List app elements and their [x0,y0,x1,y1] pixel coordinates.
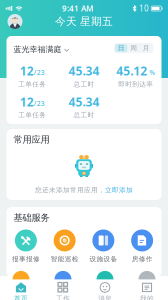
staticText: 您还未添加常用应用， [35,186,105,194]
staticText: 立即添加 [105,186,133,194]
button[interactable]: Profile [7,14,22,29]
button[interactable]: 设施设备 [84,229,123,263]
button[interactable]: 智能巡检 [45,229,84,263]
staticText: 总工时 [73,80,94,88]
staticText: /23 [34,99,45,108]
button[interactable]: 消息 [84,273,126,300]
staticText: 月 [143,44,150,52]
staticText: 蓝光幸福满庭 [13,44,61,54]
staticText: 日 [118,44,125,52]
staticText: 工单任务 [18,80,46,88]
button[interactable]: 首页 [0,273,42,300]
staticText: 45.12 [116,63,147,79]
staticText: 基础服务 [13,212,49,223]
staticText: 即时到达率 [118,80,153,88]
staticText: 首页 [14,294,28,300]
button[interactable]: 我的 [126,273,168,300]
staticText: 我的 [140,294,154,300]
button[interactable]: 立即添加 [105,186,133,194]
button[interactable]: 周 [127,44,140,52]
staticText: 10 [139,3,149,14]
staticText: 消息 [98,294,112,300]
button[interactable]: 月 [140,44,152,52]
staticText: 总工时 [73,111,94,119]
staticText: 45.34 [68,94,99,110]
staticText: 工单任务 [18,111,46,119]
staticText: 今天 星期五 [55,15,113,28]
staticText: 报事报修 [12,255,40,263]
staticText: % [147,68,155,77]
staticText: 9:41 AM [62,3,93,14]
staticText: 12 [20,63,34,79]
staticText: 周 [130,44,137,52]
button[interactable]: 报事报修 [6,229,45,263]
button[interactable]: 工作 [42,273,84,300]
staticText: 智能巡检 [51,255,79,263]
button[interactable]: 日 [115,44,127,52]
staticText: 房修作 [132,255,153,263]
staticText: 12 [20,94,34,110]
button[interactable]: 房修作 [123,229,162,263]
staticText: 45.34 [68,63,99,79]
button[interactable]: 蓝光幸福满庭 [13,44,69,54]
staticText: 工作 [56,294,70,300]
staticText: 常用应用 [13,134,49,145]
staticText: /23 [34,68,45,77]
staticText: 设施设备 [89,255,117,263]
